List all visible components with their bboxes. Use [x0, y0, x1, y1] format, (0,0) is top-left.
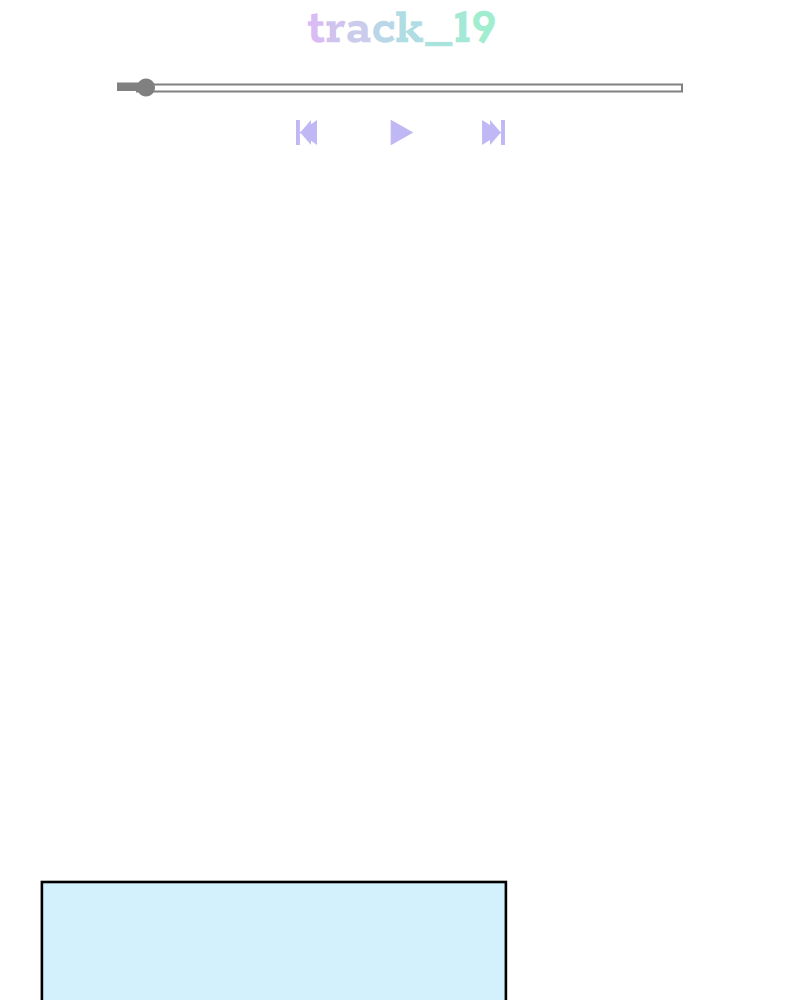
staticText: 1: [453, 0, 471, 59]
button[interactable]: Playback position: [0, 0, 800, 175]
staticText: k: [395, 0, 423, 59]
button[interactable]: Next track: [474, 112, 513, 153]
button[interactable]: Play: [383, 112, 421, 153]
staticText: r: [325, 0, 345, 59]
staticText: c: [371, 0, 395, 59]
staticText: _: [423, 0, 453, 59]
staticText: t: [307, 0, 325, 59]
button[interactable]: Previous track: [288, 112, 325, 153]
staticText: a: [345, 0, 371, 59]
staticText: 9: [471, 0, 496, 59]
